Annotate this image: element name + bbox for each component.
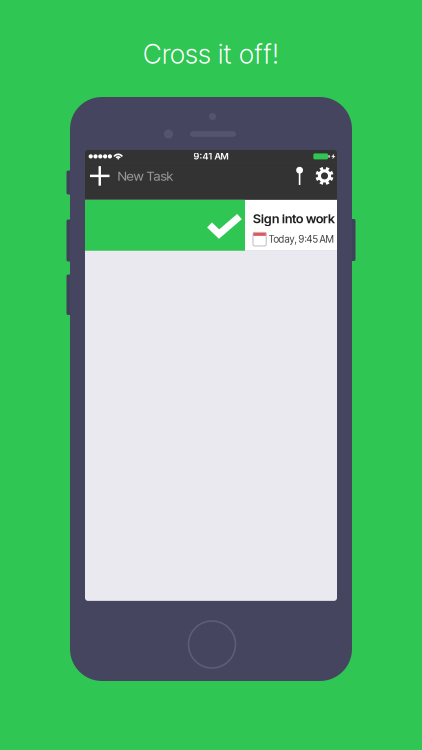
button[interactable]: Location reminder: [288, 163, 312, 189]
staticText: 9:41 AM: [193, 150, 228, 162]
button[interactable]: New Task: [112, 161, 178, 191]
button[interactable]: New task: [85, 162, 112, 190]
button[interactable]: Sign into work: [85, 200, 337, 251]
staticText: Cross it off!: [143, 38, 279, 70]
staticText: New Task: [117, 168, 173, 184]
staticText: Sign into work: [253, 211, 335, 226]
button[interactable]: Settings: [312, 163, 337, 189]
staticText: Today, 9:45 AM: [269, 233, 334, 245]
